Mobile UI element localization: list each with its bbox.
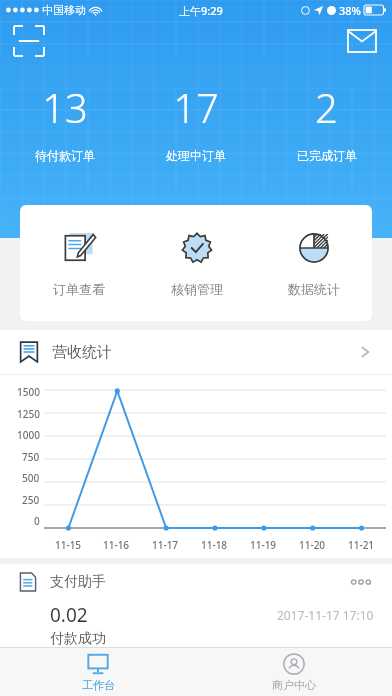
staticText: 0.02 — [50, 602, 88, 628]
button[interactable]: 数据统计 — [255, 205, 372, 321]
button[interactable]: 2 — [261, 74, 392, 182]
staticText: 11-15 — [55, 538, 82, 552]
button[interactable]: Scan QR code — [14, 26, 44, 56]
staticText: 商户中心 — [272, 678, 316, 692]
staticText: 待付款订单 — [35, 148, 95, 163]
button[interactable]: 商户中心 — [196, 648, 392, 696]
staticText: 1250 — [17, 407, 40, 421]
staticText: 2 — [315, 80, 338, 134]
staticText: 250 — [22, 493, 40, 507]
staticText: 11-18 — [201, 538, 228, 552]
staticText: 1500 — [17, 385, 40, 399]
button[interactable]: Messages — [346, 28, 378, 54]
staticText: 11-16 — [103, 538, 130, 552]
staticText: 11-21 — [348, 538, 375, 552]
staticText: 处理中订单 — [166, 148, 226, 163]
staticText: 支付助手 — [50, 573, 106, 591]
staticText: 17 — [173, 80, 219, 134]
button[interactable]: 核销管理 — [138, 205, 255, 321]
staticText: 0 — [34, 514, 40, 528]
staticText: 11-20 — [299, 538, 326, 552]
staticText: 订单查看 — [53, 281, 105, 297]
other: More options — [348, 575, 374, 589]
staticText: 38% — [339, 3, 361, 18]
staticText: 核销管理 — [171, 281, 223, 297]
button[interactable]: 营收统计 — [0, 330, 392, 374]
button[interactable]: 工作台 — [0, 648, 196, 696]
staticText: 11-17 — [152, 538, 179, 552]
staticText: 1000 — [17, 428, 40, 442]
staticText: 13 — [42, 80, 88, 134]
staticText: 已完成订单 — [297, 148, 357, 163]
staticText: 500 — [22, 471, 40, 485]
staticText: 付款成功 — [50, 630, 106, 647]
button[interactable]: 17 — [130, 74, 261, 182]
staticText: 中国移动 — [42, 3, 86, 17]
staticText: 上午9:29 — [179, 3, 223, 18]
staticText: 750 — [22, 450, 40, 464]
button[interactable]: 支付助手 — [0, 564, 392, 647]
button[interactable]: 13 — [0, 74, 130, 182]
staticText: 营收统计 — [52, 343, 112, 362]
staticText: 11-19 — [250, 538, 277, 552]
staticText: 2017-11-17 17:10 — [277, 607, 374, 623]
button[interactable]: 订单查看 — [20, 205, 138, 321]
staticText: 工作台 — [82, 678, 115, 692]
staticText: 数据统计 — [288, 281, 340, 297]
